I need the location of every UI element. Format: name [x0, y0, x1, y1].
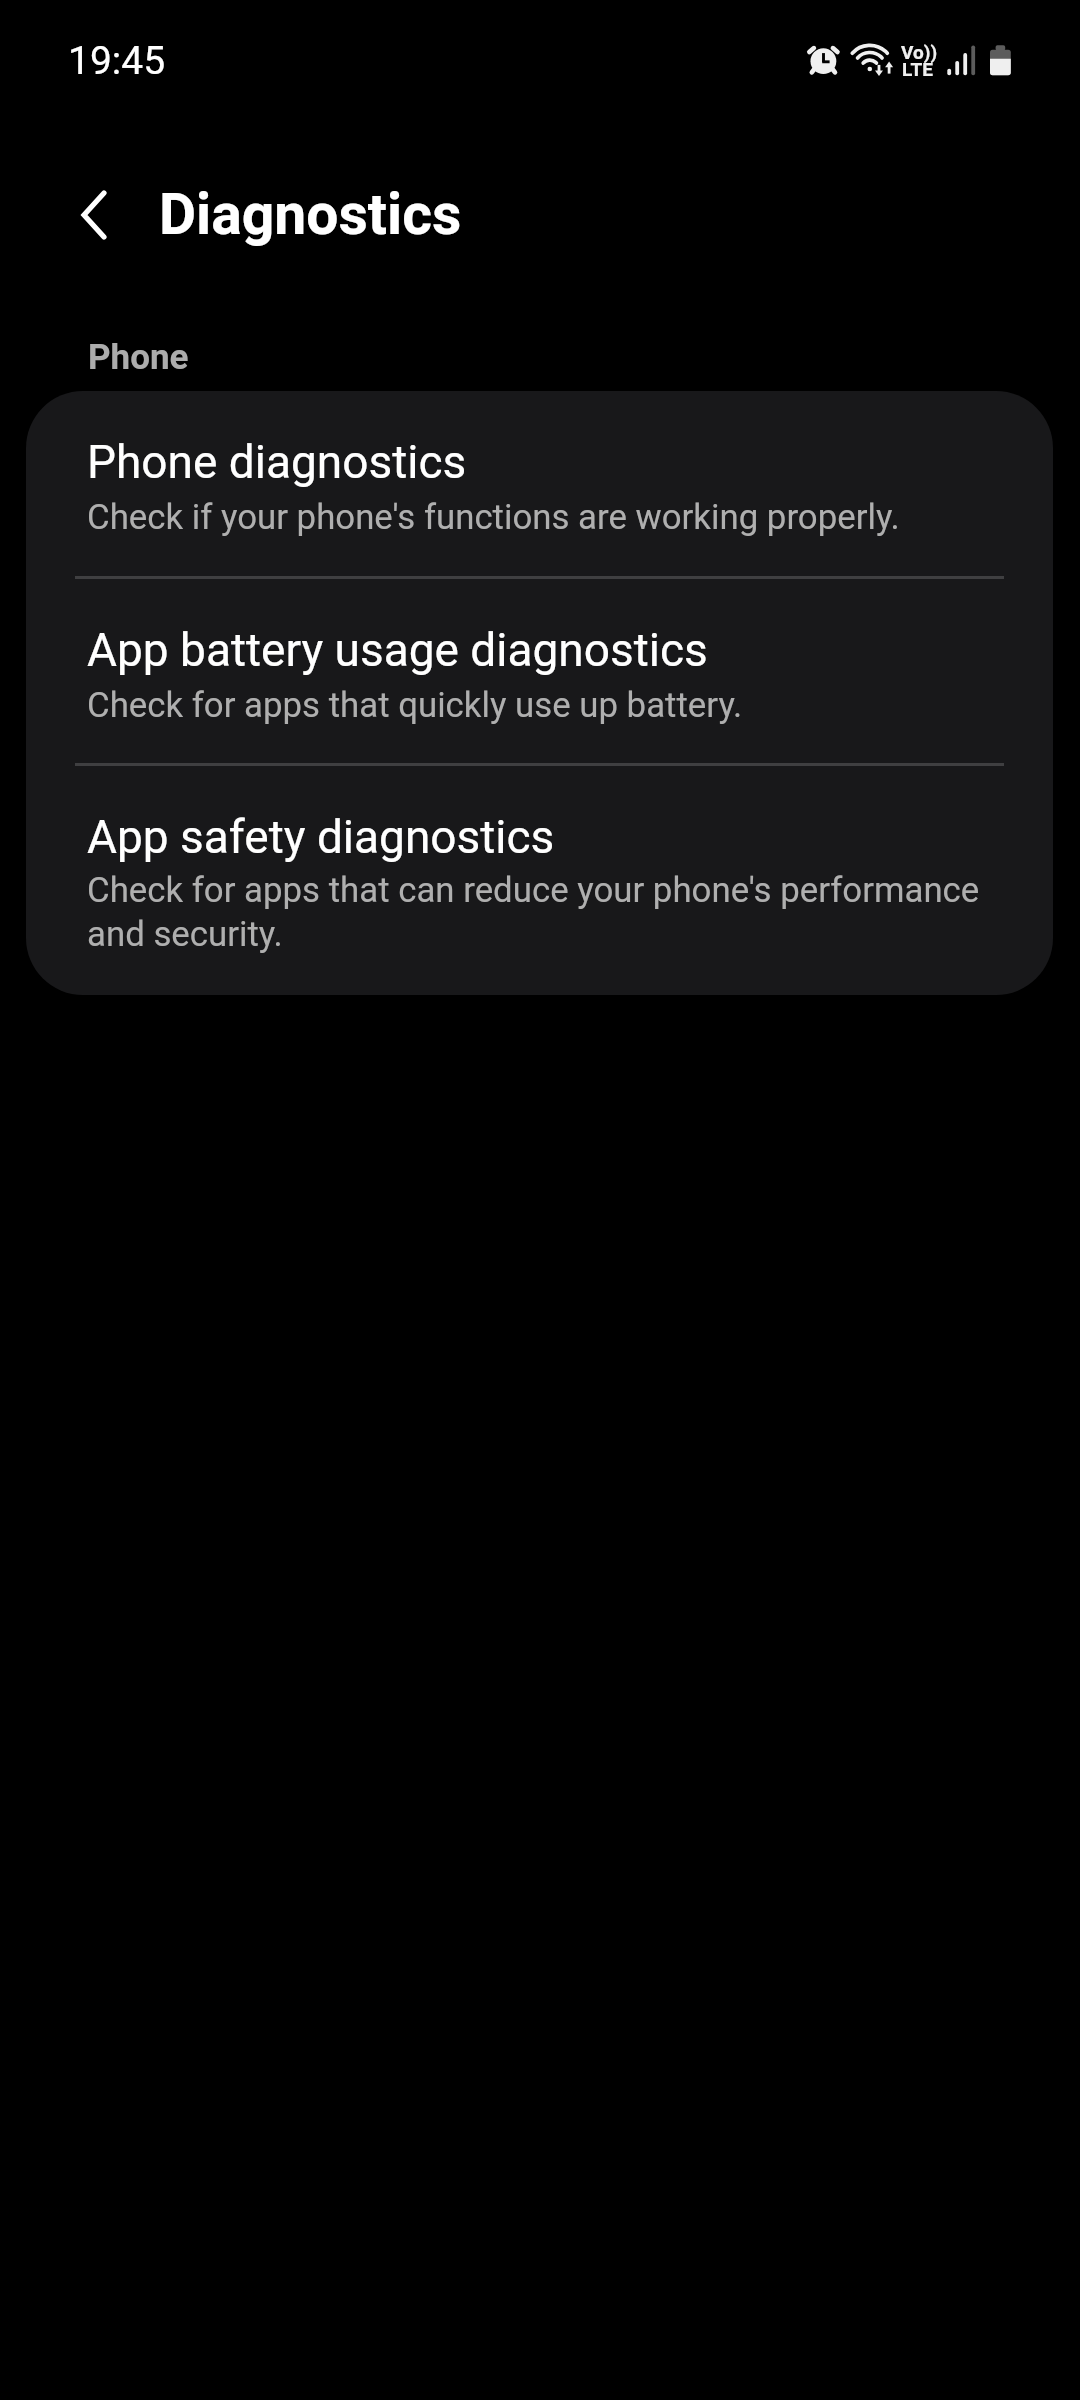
button[interactable]: App battery usage diagnostics [26, 576, 1053, 763]
other: Wi-Fi connected [846, 40, 896, 80]
staticText: Check for apps that quickly use up batte… [87, 685, 987, 726]
staticText: Phone diagnostics [87, 435, 467, 489]
button[interactable]: Phone diagnostics [26, 391, 1053, 576]
staticText: Phone [88, 337, 189, 378]
staticText: App battery usage diagnostics [87, 623, 708, 677]
other: Battery [988, 44, 1014, 78]
staticText: Vo)) [901, 41, 938, 63]
other: Alarm set [806, 42, 842, 78]
staticText: 19:45 [68, 38, 166, 84]
other: Mobile signal [947, 45, 977, 77]
button[interactable]: Navigate up [58, 174, 130, 256]
staticText: Check for apps that can reduce your phon… [87, 870, 987, 954]
staticText: Check if your phone's functions are work… [87, 497, 987, 538]
staticText: Diagnostics [159, 181, 462, 248]
button[interactable]: App safety diagnostics [26, 763, 1053, 995]
staticText: LTE [902, 58, 933, 80]
staticText: App safety diagnostics [87, 810, 555, 864]
